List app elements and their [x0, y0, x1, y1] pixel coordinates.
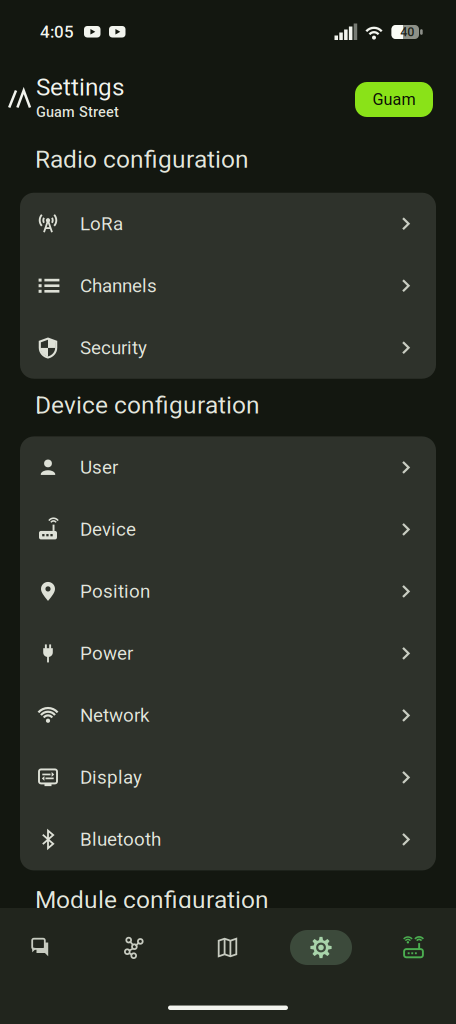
button[interactable]: Map	[146, 935, 239, 959]
staticText: Bluetooth	[80, 828, 161, 850]
staticText: Channels	[80, 275, 157, 297]
staticText: Device configuration	[35, 391, 260, 419]
staticText: Security	[80, 337, 147, 359]
staticText: Display	[80, 766, 142, 788]
button[interactable]: Settings	[239, 930, 352, 965]
button[interactable]: Network	[20, 684, 436, 746]
staticText: Guam	[372, 90, 415, 109]
staticText: Module configuration	[35, 885, 269, 914]
button[interactable]: Nodes	[53, 935, 146, 959]
staticText: LoRa	[80, 213, 123, 235]
button[interactable]: Guam	[355, 82, 433, 117]
staticText: Position	[80, 580, 150, 602]
button[interactable]: Device	[20, 498, 436, 560]
staticText: Network	[80, 704, 150, 726]
staticText: Radio configuration	[35, 145, 249, 174]
button[interactable]: Connection	[352, 935, 425, 959]
staticText: Device	[80, 518, 136, 540]
staticText: User	[80, 456, 118, 478]
button[interactable]: Security	[20, 317, 436, 379]
staticText: Power	[80, 642, 133, 664]
staticText: Guam Street	[36, 103, 119, 120]
button[interactable]: Display	[20, 746, 436, 808]
button[interactable]: Power	[20, 622, 436, 684]
button[interactable]: Channels	[20, 255, 436, 317]
button[interactable]: User	[20, 436, 436, 498]
staticText: 40	[400, 25, 414, 39]
staticText: 4:05	[40, 22, 74, 42]
button[interactable]: LoRa	[20, 193, 436, 255]
button[interactable]: Messages	[0, 935, 53, 959]
staticText: Settings	[36, 73, 125, 101]
button[interactable]: Position	[20, 560, 436, 622]
button[interactable]: Bluetooth	[20, 808, 436, 870]
